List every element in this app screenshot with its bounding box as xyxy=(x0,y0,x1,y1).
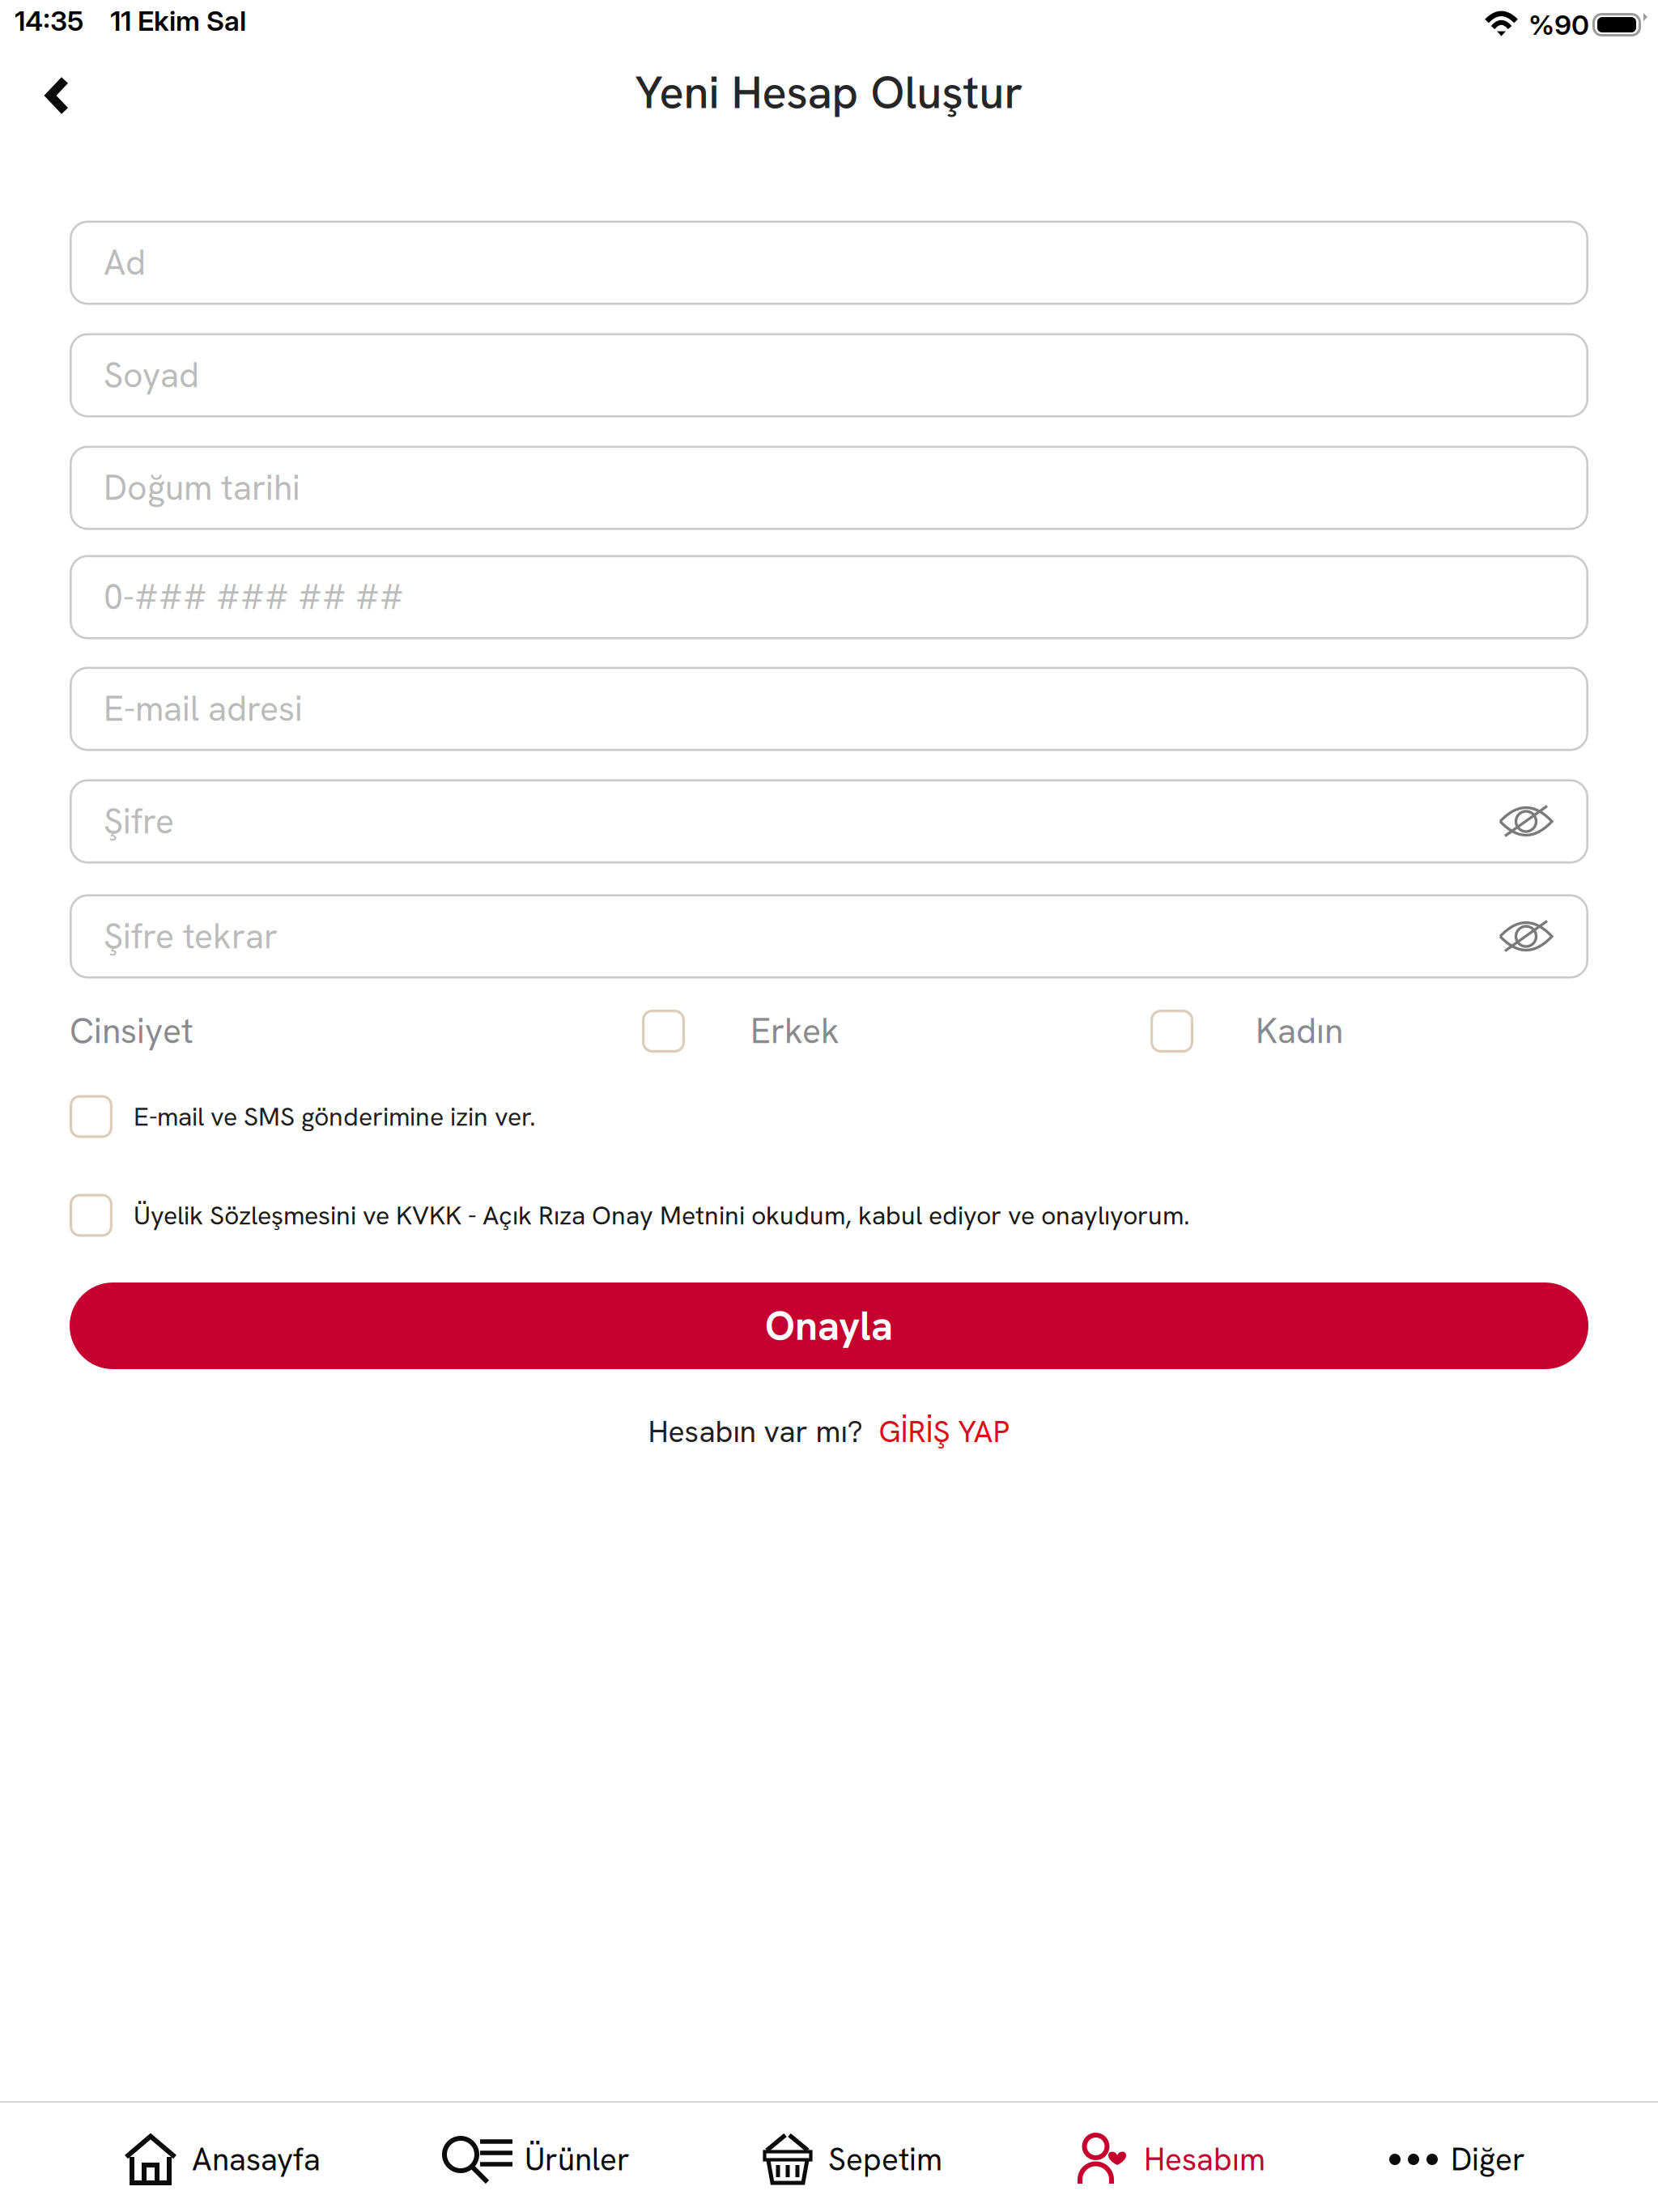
staticText: Doğum tarihi xyxy=(104,465,300,510)
button[interactable]: Ad xyxy=(70,221,1588,304)
staticText: Şifre tekrar xyxy=(104,914,278,959)
button[interactable]: Şifre tekrar xyxy=(70,895,1588,978)
button[interactable]: Anasayfa xyxy=(123,2134,321,2184)
staticText: Soyad xyxy=(104,353,199,398)
staticText: E-mail ve SMS gönderimine izin ver. xyxy=(134,1100,536,1133)
button[interactable]: E-mail adresi xyxy=(70,667,1588,751)
button[interactable]: Soyad xyxy=(70,334,1588,417)
button[interactable]: Şifre xyxy=(70,780,1588,863)
staticText: Şifre xyxy=(104,799,174,844)
staticText: Yeni Hesap Oluştur xyxy=(635,63,1023,122)
staticText: Ürünler xyxy=(525,2139,630,2180)
staticText: Hesabın var mı? xyxy=(648,1412,863,1451)
button[interactable]: 0-### ### ## ## xyxy=(70,555,1588,639)
staticText: E-mail adresi xyxy=(104,686,303,731)
staticText: Kadın xyxy=(1256,1009,1343,1054)
staticText: %90 xyxy=(1528,8,1589,41)
staticText: 0-### ### ## ## xyxy=(104,575,404,620)
button[interactable]: Sepetim xyxy=(761,2134,942,2184)
staticText: Hesabım xyxy=(1144,2139,1265,2180)
staticText: Diğer xyxy=(1451,2139,1525,2180)
button[interactable]: Back xyxy=(30,62,85,130)
button[interactable]: Kadın xyxy=(1150,1010,1343,1053)
staticText: 11 Ekim Sal xyxy=(110,4,246,37)
staticText: GİRİŞ YAP xyxy=(879,1412,1010,1451)
staticText: Ad xyxy=(104,240,146,285)
staticText: 14:35 xyxy=(15,4,83,37)
staticText: Sepetim xyxy=(828,2139,942,2180)
button[interactable]: Diğer xyxy=(1389,2134,1525,2184)
button[interactable]: E-mail ve SMS gönderimine izin ver. xyxy=(70,1095,536,1138)
button[interactable]: Üyelik Sözleşmesini ve KVKK - Açık Rıza … xyxy=(70,1193,1190,1237)
button[interactable]: Doğum tarihi xyxy=(70,446,1588,530)
staticText: Onayla xyxy=(765,1300,893,1352)
button[interactable]: Hesabım xyxy=(1080,2134,1265,2184)
button[interactable]: Erkek xyxy=(642,1010,840,1053)
button[interactable]: GİRİŞ YAP xyxy=(879,1412,1010,1451)
button[interactable]: Onayla xyxy=(70,1283,1588,1369)
staticText: Erkek xyxy=(750,1009,840,1054)
staticText: Üyelik Sözleşmesini ve KVKK - Açık Rıza … xyxy=(134,1198,1190,1232)
staticText: Anasayfa xyxy=(192,2139,321,2180)
button[interactable]: Ürünler xyxy=(441,2134,630,2184)
staticText: Cinsiyet xyxy=(70,1009,193,1054)
